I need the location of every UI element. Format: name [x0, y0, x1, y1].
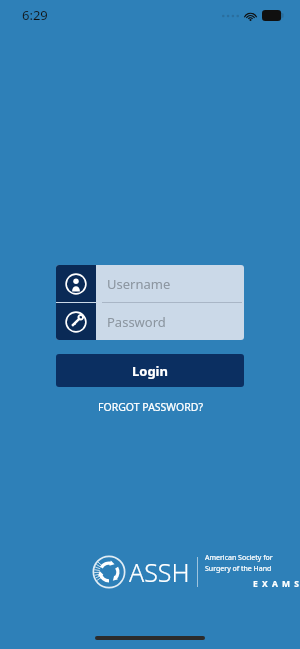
staticText: 6:29 [22, 6, 48, 24]
button[interactable]: FORGOT PASSWORD? [56, 400, 244, 414]
staticText: Login [132, 362, 168, 380]
button[interactable]: Password field [56, 303, 244, 340]
staticText: Surgery of the Hand [205, 564, 272, 574]
staticText: FORGOT PASSWORD? [98, 400, 203, 414]
staticText: E X A M S [205, 578, 300, 590]
button[interactable]: Username field [56, 265, 244, 302]
staticText: ASSH [129, 555, 190, 589]
other: Password field [56, 303, 96, 340]
staticText: Username [107, 275, 171, 293]
other: Username field [56, 265, 96, 302]
staticText: American Society for [205, 553, 273, 563]
button[interactable]: Login [56, 354, 244, 387]
staticText: Password [107, 313, 166, 331]
